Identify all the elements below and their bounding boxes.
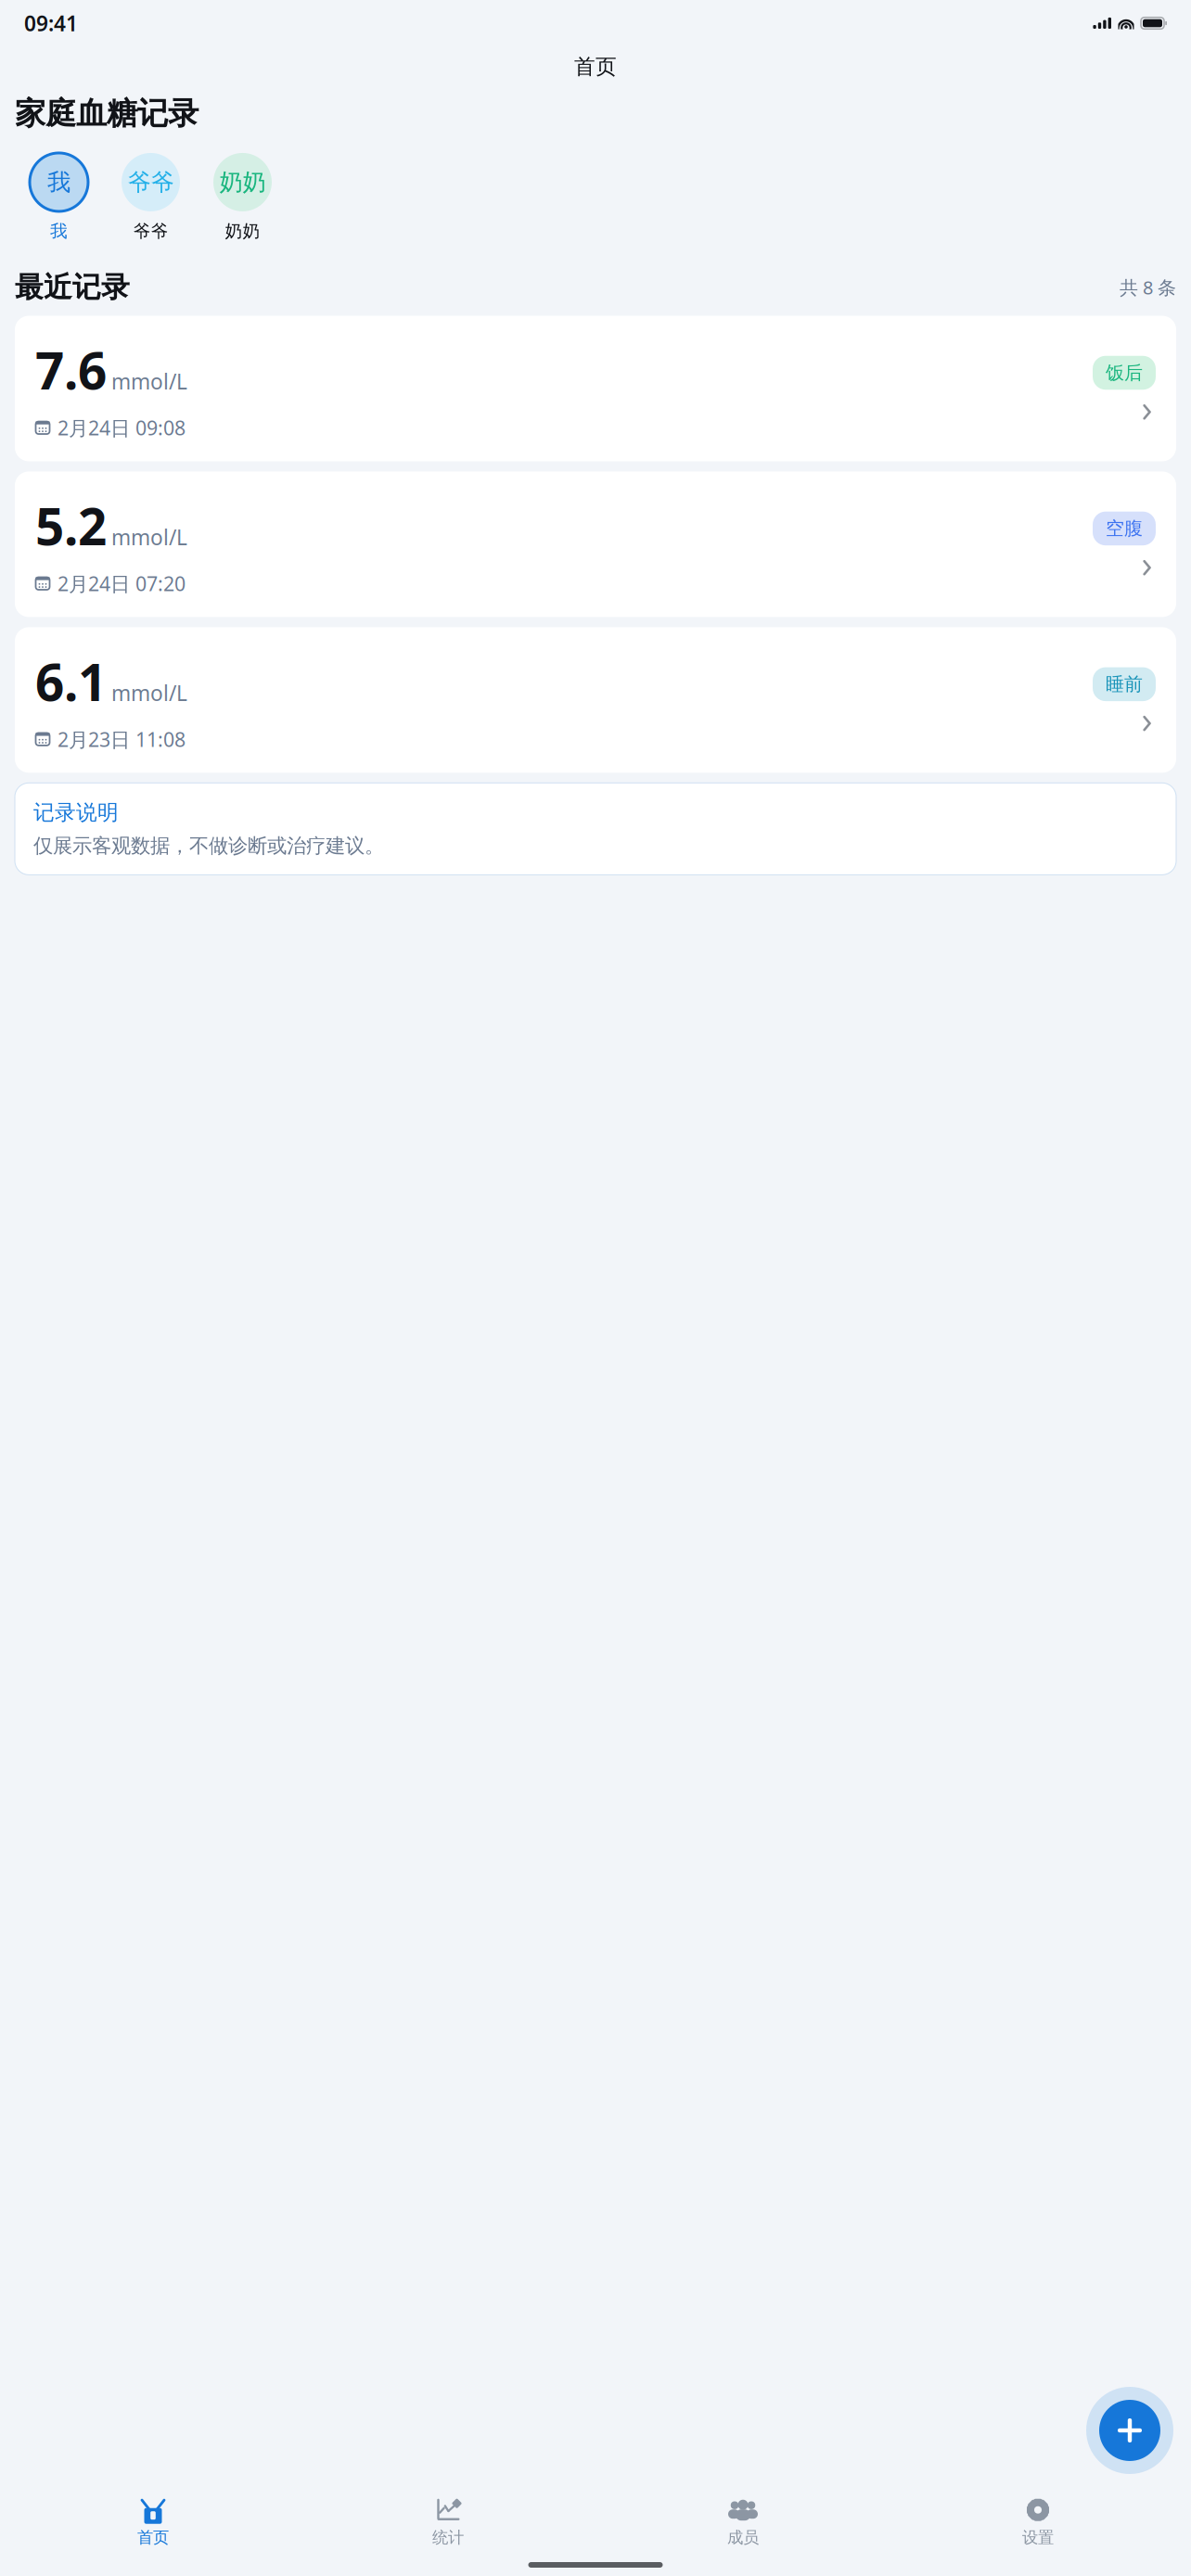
staticText: 奶奶 [225, 221, 260, 242]
button[interactable]: 成员 [595, 2497, 890, 2547]
staticText: 空腹 [1106, 517, 1143, 540]
staticText: 仅展示客观数据，不做诊断或治疗建议。 [33, 834, 384, 858]
button[interactable]: 首页 [6, 2497, 301, 2547]
staticText: 首页 [574, 54, 617, 80]
staticText: 5.2 [35, 492, 107, 559]
button[interactable]: 奶奶 [197, 153, 288, 242]
staticText: 2月24日 07:20 [58, 570, 186, 597]
staticText: 我 [47, 168, 70, 197]
staticText: 爷爷 [128, 168, 174, 197]
staticText: 最近记录 [15, 270, 130, 305]
button[interactable]: 设置 [890, 2497, 1185, 2547]
staticText: 记录说明 [33, 800, 119, 825]
staticText: 睡前 [1106, 673, 1143, 696]
staticText: 家庭血糖记录 [15, 95, 198, 133]
staticText: mmol/L [111, 367, 187, 395]
button[interactable]: 我 [13, 153, 105, 242]
staticText: mmol/L [111, 679, 187, 707]
staticText: 7.6 [35, 336, 107, 403]
button[interactable]: 添加记录 [1086, 2387, 1173, 2474]
button[interactable]: 6.1 [15, 627, 1176, 773]
staticText: 成员 [727, 2528, 759, 2547]
staticText: mmol/L [111, 523, 187, 551]
button[interactable]: 7.6 [15, 316, 1176, 461]
staticText: 设置 [1022, 2528, 1054, 2547]
staticText: 2月24日 09:08 [58, 415, 186, 441]
staticText: 饭后 [1106, 361, 1143, 384]
staticText: 我 [50, 221, 68, 242]
staticText: 共 8 条 [1120, 275, 1176, 300]
button[interactable]: 爷爷 [105, 153, 197, 242]
staticText: 2月23日 11:08 [58, 726, 186, 752]
staticText: 奶奶 [219, 168, 266, 197]
staticText: 首页 [137, 2528, 169, 2547]
button[interactable]: 统计 [301, 2497, 595, 2547]
staticText: 爷爷 [133, 221, 168, 242]
staticText: 统计 [432, 2528, 464, 2547]
staticText: 09:41 [24, 9, 78, 37]
staticText: 6.1 [35, 648, 107, 715]
button[interactable]: 5.2 [15, 472, 1176, 617]
